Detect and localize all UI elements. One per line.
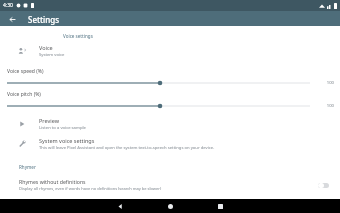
button[interactable]: Voice speed (%) — [7, 78, 310, 88]
button[interactable]: Rhymes without definitions — [0, 175, 340, 194]
other: System voice settings — [18, 140, 26, 148]
button[interactable]: Back — [5, 12, 19, 26]
staticText: Voice pitch (%) — [7, 91, 41, 98]
staticText: Display all rhymes, even if words have n… — [19, 186, 162, 191]
staticText: Voice — [39, 44, 53, 51]
staticText: Rhymes without definitions — [19, 178, 86, 185]
button[interactable]: System voice settings — [0, 134, 340, 154]
staticText: This will leave Pixel Assistant and open… — [39, 145, 215, 151]
staticText: System voice — [39, 52, 65, 58]
staticText: Settings — [28, 14, 60, 25]
button[interactable]: Back — [108, 199, 132, 213]
button[interactable]: Preview — [0, 114, 340, 134]
staticText: 100 — [326, 80, 334, 86]
button[interactable]: Voice pitch (%) — [7, 101, 310, 111]
button[interactable]: Recents — [208, 199, 232, 213]
staticText: Preview — [39, 117, 60, 124]
other: Voice — [18, 47, 26, 55]
button[interactable]: Voice — [0, 41, 340, 61]
button[interactable]: Rhymes without definitions — [314, 179, 332, 191]
staticText: Listen to a voice sample — [39, 125, 86, 131]
staticText: Voice speed (%) — [7, 68, 44, 75]
other: Preview — [18, 120, 26, 128]
staticText: 100 — [326, 103, 334, 109]
button[interactable]: Home — [158, 199, 182, 213]
staticText: Rhymer — [19, 164, 36, 170]
staticText: 4:30 — [3, 2, 13, 9]
staticText: System voice settings — [39, 137, 95, 144]
staticText: Voice settings — [63, 33, 93, 39]
